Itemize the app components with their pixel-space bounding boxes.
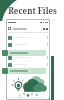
staticText: Recent Files — [8, 5, 57, 16]
button[interactable]: Menu — [8, 26, 48, 31]
button[interactable]: More options — [46, 28, 48, 30]
button[interactable] — [8, 35, 48, 40]
button[interactable] — [2, 49, 46, 56]
other: Menu — [8, 27, 11, 30]
button[interactable] — [8, 55, 48, 60]
button[interactable] — [8, 42, 48, 47]
button[interactable]: Search — [43, 28, 45, 30]
button[interactable]: Recent Files — [0, 5, 64, 16]
button[interactable] — [8, 62, 48, 67]
button[interactable] — [2, 67, 46, 74]
